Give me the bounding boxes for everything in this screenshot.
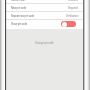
staticText: Change pin code (35, 41, 54, 45)
button[interactable]: Change pin code (6, 41, 83, 45)
staticText: Repeat new pin code (11, 14, 35, 18)
button[interactable]: Old pin code (6, 0, 83, 3)
staticText: Verification (66, 14, 79, 18)
button[interactable]: Show pin code (6, 20, 83, 27)
button[interactable]: Repeat new pin code (6, 12, 83, 19)
staticText: New pin code (11, 6, 27, 10)
staticText: Old pin code (11, 0, 25, 1)
staticText: Required (68, 0, 79, 1)
button[interactable]: New pin code (6, 4, 83, 11)
staticText: Show pin code (11, 22, 28, 26)
staticText: Required (68, 6, 79, 10)
